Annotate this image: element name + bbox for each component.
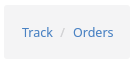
staticText: / (60, 24, 65, 41)
button[interactable]: Track (21, 22, 54, 43)
button[interactable]: Orders (72, 22, 115, 43)
